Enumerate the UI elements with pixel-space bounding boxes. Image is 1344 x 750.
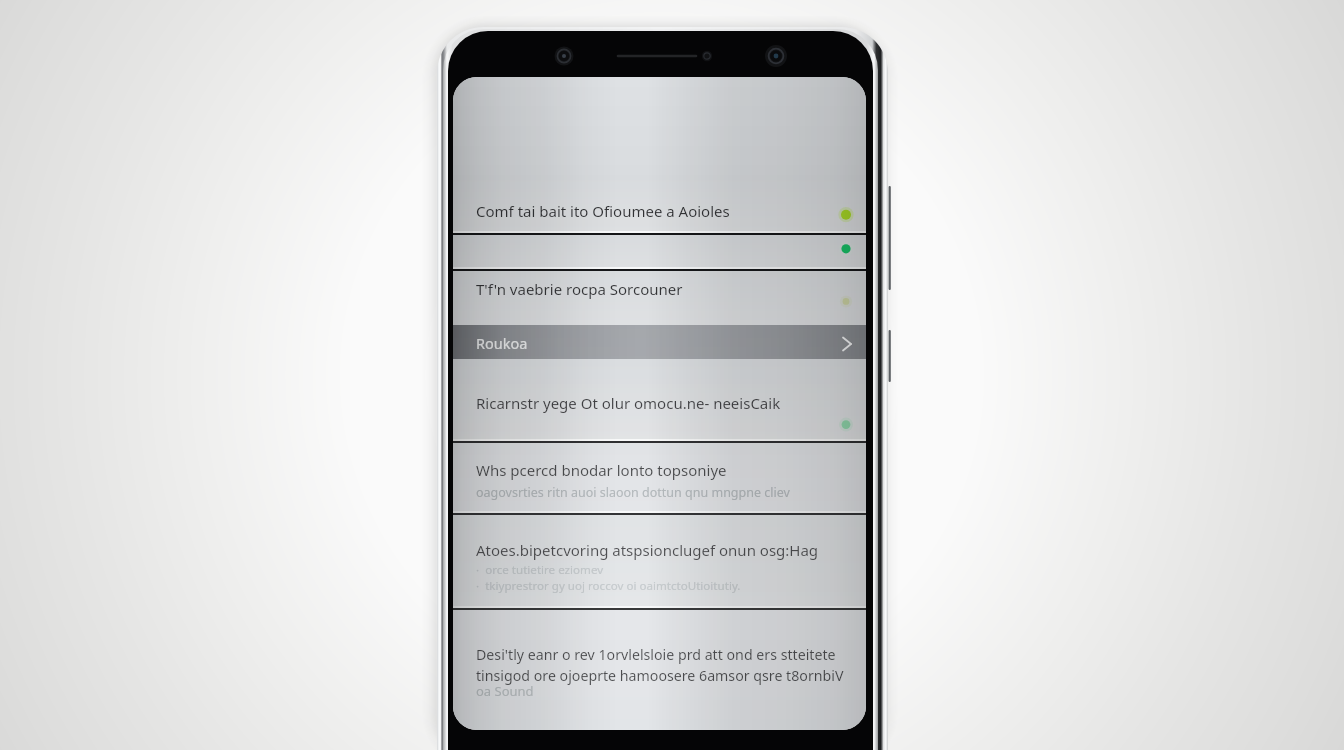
staticText: Comf tai bait ito Ofioumee a Aoioles bbox=[476, 201, 730, 221]
staticText: · tkiyprestror gy uoj roccov oi oaimtcto… bbox=[476, 578, 741, 594]
staticText: oagovsrties ritn auoi slaoon dottun qnu … bbox=[476, 484, 790, 501]
button[interactable]: Comf tai bait ito Ofioumee a Aoioles bbox=[453, 175, 866, 233]
staticText: Roukoa bbox=[476, 333, 528, 353]
staticText: tinsigod ore ojoeprte hamoosere 6amsor q… bbox=[476, 666, 844, 685]
button[interactable]: Atoes.bipetcvoring atspsionclugef onun o… bbox=[453, 515, 866, 608]
staticText: · orce tutietire eziomev bbox=[476, 562, 604, 578]
staticText: Desi'tly eanr o rev 1orvlelsloie prd att… bbox=[476, 645, 836, 664]
staticText: T'f'n vaebrie rocpa Sorcouner bbox=[476, 279, 683, 299]
button[interactable]: T'f'n vaebrie rocpa Sorcouner bbox=[453, 271, 866, 325]
button[interactable]: Open bbox=[453, 325, 866, 359]
button[interactable]: Ricarnstr yege Ot olur omocu.ne- neeisCa… bbox=[453, 359, 866, 441]
button[interactable]: Whs pcercd bnodar lonto topsoniye bbox=[453, 443, 866, 513]
staticText: Ricarnstr yege Ot olur omocu.ne- neeisCa… bbox=[476, 393, 781, 413]
button[interactable]: Desi'tly eanr o rev 1orvlelsloie prd att… bbox=[453, 610, 866, 730]
button[interactable]: Status indicator bbox=[453, 235, 866, 269]
staticText: Atoes.bipetcvoring atspsionclugef onun o… bbox=[476, 540, 819, 560]
staticText: Whs pcercd bnodar lonto topsoniye bbox=[476, 460, 727, 480]
staticText: oa Sound bbox=[476, 682, 534, 700]
